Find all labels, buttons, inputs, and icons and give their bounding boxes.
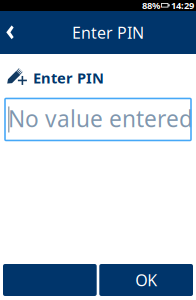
button[interactable]: Cancel — [3, 264, 97, 296]
staticText: OK — [135, 269, 157, 291]
staticText: Enter PIN — [33, 68, 104, 87]
button[interactable]: OK — [99, 264, 193, 296]
staticText: Enter PIN — [72, 22, 144, 43]
staticText: No value entered — [8, 103, 193, 133]
staticText: 88% — [142, 0, 160, 12]
button[interactable]: Back — [0, 11, 26, 54]
staticText: 14:29 — [171, 0, 194, 12]
